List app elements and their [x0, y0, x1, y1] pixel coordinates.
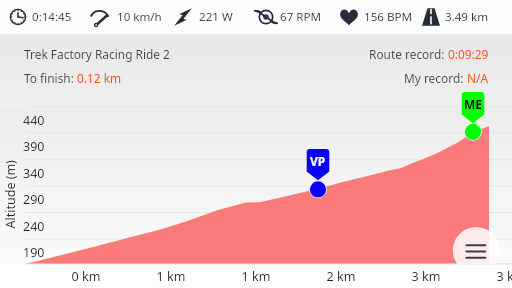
staticText: Altitude (m) — [1, 159, 18, 228]
staticText: 390 — [23, 138, 45, 155]
staticText: 3 km — [401, 268, 451, 285]
staticText: 0:14:45 — [32, 9, 72, 25]
staticText: 340 — [23, 165, 45, 182]
button[interactable]: Trek Factory Racing Ride 2 — [0, 34, 512, 106]
button[interactable]: Heart rate — [337, 0, 410, 34]
staticText: N/A — [467, 70, 489, 86]
staticText: 1 km — [231, 268, 281, 285]
button[interactable]: Cadence — [254, 0, 326, 34]
button[interactable]: Power — [171, 0, 245, 34]
button[interactable]: ME — [451, 92, 495, 144]
staticText: 1 km — [146, 268, 196, 285]
button[interactable]: Distance — [419, 0, 491, 34]
button[interactable]: Speed — [88, 0, 163, 34]
button[interactable]: VP — [296, 149, 340, 201]
staticText: 10 km/h — [117, 9, 162, 25]
staticText: To finish: — [24, 70, 77, 86]
staticText: 3.49 km — [445, 9, 489, 25]
staticText: 0:09:29 — [448, 46, 489, 62]
staticText: 290 — [23, 191, 45, 208]
staticText: ME — [464, 96, 483, 112]
staticText: My record: — [404, 70, 467, 86]
staticText: 240 — [23, 218, 45, 235]
staticText: Trek Factory Racing Ride 2 — [24, 46, 170, 62]
staticText: 190 — [23, 244, 45, 261]
staticText: 3 km — [486, 268, 512, 285]
staticText: 440 — [23, 112, 45, 129]
staticText: 67 RPM — [280, 9, 322, 25]
staticText: 156 BPM — [364, 9, 412, 25]
staticText: 2 km — [316, 268, 366, 285]
staticText: 0.12 km — [77, 70, 122, 86]
staticText: 221 W — [199, 9, 233, 25]
staticText: 0 km — [61, 268, 111, 285]
staticText: Route record: — [369, 46, 448, 62]
staticText: VP — [310, 153, 326, 169]
button[interactable]: Elapsed time — [6, 0, 78, 34]
